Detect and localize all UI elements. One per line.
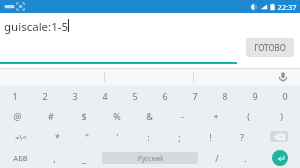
staticText: 7 — [192, 90, 198, 102]
button[interactable]: / — [202, 147, 231, 168]
staticText: * — [55, 131, 60, 143]
staticText: . — [244, 152, 247, 164]
button[interactable]: & — [133, 106, 166, 126]
button[interactable]: % — [100, 106, 133, 126]
button[interactable]: ГОТОВО — [246, 38, 294, 57]
staticText: АБВ — [13, 153, 28, 163]
staticText: guiscale:1-5 — [4, 19, 69, 35]
staticText: ? — [240, 131, 244, 143]
button[interactable]: 2 — [30, 86, 60, 106]
button[interactable]: 9 — [240, 86, 270, 106]
button[interactable]: * — [42, 126, 72, 147]
staticText: % — [113, 110, 121, 122]
staticText: # — [48, 110, 54, 122]
button[interactable]: @ — [1, 106, 34, 126]
button[interactable]: ! — [195, 126, 226, 147]
staticText: : — [147, 131, 150, 143]
button[interactable]: ) — [265, 106, 298, 126]
button[interactable]: , — [40, 147, 69, 168]
staticText: + — [213, 110, 219, 122]
staticText: _ — [82, 152, 86, 164]
staticText: ) — [280, 110, 283, 122]
staticText: 2 — [42, 90, 48, 102]
button[interactable]: ( — [232, 106, 265, 126]
button[interactable]: . — [231, 147, 260, 168]
staticText: 22:37 — [277, 2, 297, 12]
staticText: " — [85, 131, 89, 143]
button[interactable]: Русский — [98, 147, 202, 168]
staticText: $ — [81, 110, 87, 122]
button[interactable]: АБВ — [0, 147, 40, 168]
button[interactable]: 3 — [60, 86, 90, 106]
button[interactable]: - — [166, 106, 199, 126]
button[interactable]: 0 — [270, 86, 300, 106]
staticText: 6 — [162, 90, 168, 102]
button[interactable]: 4 — [90, 86, 120, 106]
button[interactable]: " — [72, 126, 102, 147]
button[interactable]: Voice input — [276, 70, 290, 84]
staticText: ( — [247, 110, 250, 122]
button[interactable]: 7 — [180, 86, 210, 106]
staticText: 9 — [252, 90, 258, 102]
button[interactable]: 8 — [210, 86, 240, 106]
button[interactable]: ? — [226, 126, 257, 147]
button[interactable]: $ — [67, 106, 100, 126]
staticText: 0 — [282, 90, 288, 102]
button[interactable]: Backspace — [257, 126, 300, 147]
staticText: @ — [13, 110, 22, 122]
staticText: ' — [116, 131, 119, 143]
button[interactable]: Enter — [260, 147, 300, 168]
button[interactable]: + — [199, 106, 232, 126]
button[interactable]: 6 — [150, 86, 180, 106]
button[interactable]: ; — [164, 126, 195, 147]
staticText: ГОТОВО — [254, 42, 286, 53]
staticText: ; — [178, 131, 181, 143]
staticText: 1 — [12, 90, 18, 102]
staticText: 5 — [132, 90, 138, 102]
staticText: 8 — [222, 90, 228, 102]
button[interactable]: # — [34, 106, 67, 126]
button[interactable]: ' — [102, 126, 133, 147]
staticText: =\< — [15, 132, 27, 142]
staticText: / — [215, 152, 219, 164]
button[interactable]: =\< — [0, 126, 42, 147]
staticText: 3 — [72, 90, 78, 102]
staticText: Русский — [138, 154, 163, 163]
staticText: & — [146, 110, 153, 122]
staticText: - — [181, 110, 184, 122]
staticText: ! — [209, 131, 212, 143]
staticText: 4 — [102, 90, 108, 102]
button[interactable]: _ — [69, 147, 98, 168]
button[interactable]: 5 — [120, 86, 150, 106]
staticText: , — [53, 152, 56, 164]
button[interactable]: : — [133, 126, 164, 147]
button[interactable]: 1 — [0, 86, 30, 106]
